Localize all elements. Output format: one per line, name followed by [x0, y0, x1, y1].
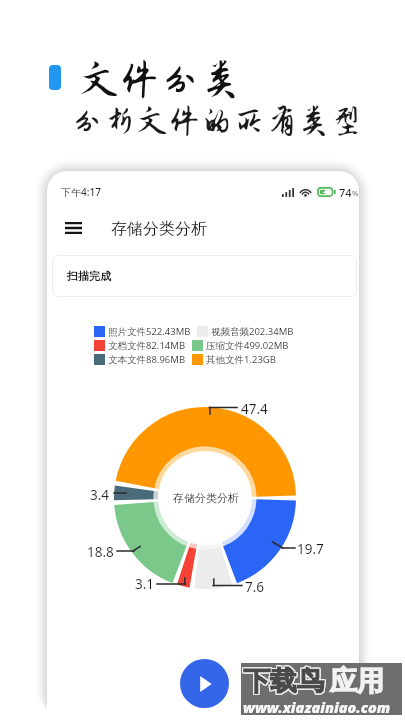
staticText: 下载鸟: [242, 665, 323, 699]
staticText: 分析文件的所有类型: [71, 103, 363, 139]
staticText: 下载鸟: [243, 663, 324, 697]
staticText: www.xiazainiao.com: [243, 697, 391, 717]
staticText: 7.6: [245, 578, 265, 596]
staticText: 下午4:17: [61, 185, 101, 199]
staticText: 下载鸟: [244, 664, 325, 698]
staticText: 视频音频202.34MB: [211, 325, 294, 338]
staticText: 文件分类: [79, 57, 242, 102]
staticText: %: [352, 188, 359, 198]
staticText: 3.1: [135, 575, 155, 593]
staticText: 47.4: [241, 400, 268, 418]
staticText: 存储分类分析: [173, 491, 239, 505]
staticText: 下载鸟: [242, 663, 323, 697]
button[interactable]: 文本文件88.96MB: [94, 353, 186, 366]
staticText: 下载鸟: [242, 664, 323, 698]
button[interactable]: 文档文件82.14MB: [94, 339, 186, 352]
staticText: 下载鸟: [244, 665, 325, 699]
staticText: 存储分类分析: [111, 219, 207, 239]
button[interactable]: Start scan: [180, 659, 229, 708]
button[interactable]: 照片文件522.43MB: [94, 325, 191, 338]
staticText: 文档文件82.14MB: [108, 339, 186, 352]
button[interactable]: 压缩文件499.02MB: [192, 339, 289, 352]
staticText: 文本文件88.96MB: [108, 353, 186, 366]
staticText: 下载鸟: [243, 665, 324, 699]
staticText: 18.8: [87, 543, 114, 561]
staticText: 74: [339, 185, 352, 199]
staticText: 照片文件522.43MB: [108, 325, 191, 338]
button[interactable]: 其他文件1.23GB: [192, 353, 276, 366]
staticText: 应用: [330, 664, 384, 698]
staticText: 扫描完成: [67, 269, 111, 283]
staticText: 3.4: [90, 486, 110, 504]
staticText: 压缩文件499.02MB: [206, 339, 289, 352]
staticText: 其他文件1.23GB: [206, 353, 276, 366]
button[interactable]: 扫描完成: [52, 255, 357, 297]
staticText: 19.7: [297, 540, 324, 558]
button[interactable]: Menu: [60, 217, 87, 239]
staticText: 下载鸟: [243, 664, 324, 698]
button[interactable]: 视频音频202.34MB: [197, 325, 294, 338]
staticText: 下载鸟: [244, 663, 325, 697]
